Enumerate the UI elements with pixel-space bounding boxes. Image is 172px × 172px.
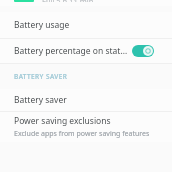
staticText: Power saving exclusions (14, 115, 111, 127)
button[interactable]: Power saving exclusions (0, 112, 172, 142)
button[interactable]: Battery usage (0, 12, 172, 38)
staticText: Battery usage (14, 19, 70, 31)
staticText: Full 5 h 11 min (42, 0, 94, 2)
staticText: Battery saver (14, 94, 67, 106)
button[interactable]: Full 5 h 11 min (0, 0, 172, 6)
button[interactable]: Battery saver (0, 89, 172, 111)
button[interactable]: Battery percentage on status bar toggle (128, 41, 158, 61)
button[interactable]: Battery percentage on status bar (0, 39, 172, 63)
staticText: Battery percentage on status bar (14, 45, 128, 57)
staticText: BATTERY SAVER (14, 72, 68, 81)
staticText: Exclude apps from power saving features (14, 129, 150, 139)
